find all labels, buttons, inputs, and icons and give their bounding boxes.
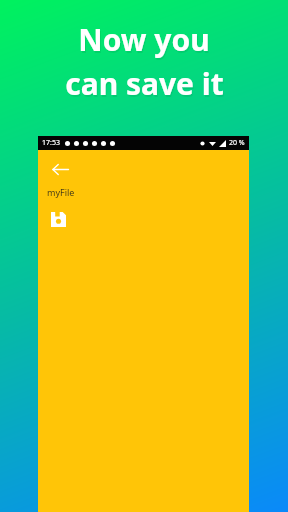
- staticText: 20 %: [229, 138, 245, 148]
- staticText: can save it: [65, 63, 224, 104]
- staticText: can save it: [66, 65, 225, 106]
- button[interactable]: Back: [45, 154, 75, 184]
- staticText: 17:53: [42, 138, 60, 148]
- staticText: myFile: [47, 186, 75, 198]
- staticText: Now you: [78, 19, 210, 60]
- button[interactable]: Save: [46, 207, 70, 231]
- staticText: Now you: [79, 21, 211, 62]
